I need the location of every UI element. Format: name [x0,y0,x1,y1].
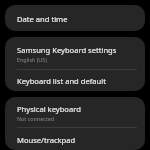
staticText: English (US) [17,56,47,63]
staticText: Samsung Keyboard settings [17,45,117,55]
staticText: Mouse/trackpad [17,135,76,145]
button[interactable]: Samsung Keyboard settings [5,37,145,69]
staticText: Not connected [17,115,55,122]
button[interactable]: Date and time [5,5,145,31]
staticText: Date and time [17,14,68,24]
staticText: Physical keyboard [17,104,81,114]
staticText: Keyboard list and default [17,76,106,86]
button[interactable]: Keyboard list and default [5,70,145,91]
button[interactable]: Mouse/trackpad [5,128,145,150]
button[interactable]: Physical keyboard [5,97,145,127]
